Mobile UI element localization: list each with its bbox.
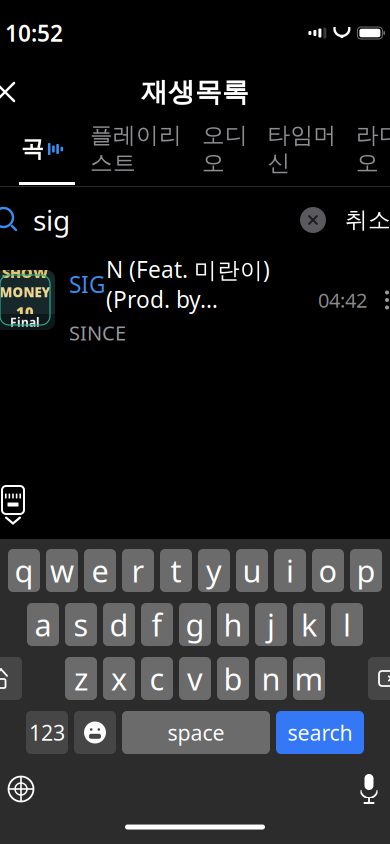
button[interactable]: g — [179, 603, 211, 646]
staticText: c — [149, 658, 164, 699]
button[interactable]: 취소 — [335, 198, 390, 242]
button[interactable]: 곡 — [3, 124, 81, 174]
button[interactable]: r — [122, 549, 154, 592]
button[interactable]: f — [141, 603, 173, 646]
button[interactable]: Dictation — [341, 765, 390, 813]
staticText: SIG — [69, 269, 106, 299]
staticText: w — [50, 550, 74, 591]
staticText: t — [170, 550, 181, 591]
button[interactable]: n — [255, 657, 287, 700]
button[interactable]: Delete — [368, 657, 390, 700]
button[interactable]: i — [274, 549, 306, 592]
button[interactable]: Hide keyboard — [0, 477, 41, 535]
button[interactable]: Emoji — [74, 711, 116, 754]
button[interactable]: c — [141, 657, 173, 700]
staticText: 타임머신 — [267, 121, 336, 177]
button[interactable]: b — [217, 657, 249, 700]
staticText: 라디오 — [356, 121, 390, 177]
staticText: g — [185, 604, 204, 645]
button[interactable]: More options — [367, 274, 390, 326]
button[interactable]: v — [179, 657, 211, 700]
staticText: 플레이리스트 — [90, 121, 182, 177]
button[interactable]: Close — [0, 70, 27, 114]
button[interactable]: SHOW — [0, 253, 390, 347]
button[interactable]: z — [65, 657, 97, 700]
button[interactable]: 타임머신 — [259, 124, 345, 174]
staticText: 04:42 — [318, 287, 367, 313]
staticText: s — [73, 604, 88, 645]
staticText: f — [151, 604, 162, 645]
staticText: 곡 — [21, 135, 44, 163]
button[interactable]: 123 — [26, 711, 68, 754]
staticText: h — [223, 604, 242, 645]
staticText: 123 — [29, 718, 65, 747]
staticText: z — [74, 658, 88, 699]
staticText: sig — [33, 201, 70, 239]
button[interactable]: d — [103, 603, 135, 646]
staticText: 10 — [16, 302, 34, 321]
button[interactable]: a — [27, 603, 59, 646]
staticText: x — [111, 658, 127, 699]
staticText: N (Feat. 미란이) (Prod. by… — [106, 254, 270, 314]
button[interactable]: k — [293, 603, 325, 646]
button[interactable]: 라디오 — [345, 124, 390, 174]
button[interactable]: l — [331, 603, 363, 646]
staticText: q — [14, 550, 33, 591]
button[interactable]: h — [217, 603, 249, 646]
button[interactable]: space — [122, 711, 270, 754]
button[interactable]: u — [236, 549, 268, 592]
staticText: SHOW — [2, 263, 48, 282]
staticText: SINCE — [69, 319, 126, 346]
button[interactable]: m — [293, 657, 325, 700]
staticText: d — [109, 604, 128, 645]
staticText: space — [167, 718, 224, 747]
button[interactable]: p — [350, 549, 382, 592]
button[interactable]: s — [65, 603, 97, 646]
staticText: MONEY — [0, 283, 50, 301]
staticText: n — [261, 658, 280, 699]
staticText: v — [187, 658, 203, 699]
staticText: Final — [10, 314, 40, 330]
button[interactable]: y — [198, 549, 230, 592]
staticText: 오디오 — [202, 121, 248, 177]
staticText: j — [267, 604, 275, 645]
staticText: search — [287, 718, 352, 747]
button[interactable]: x — [103, 657, 135, 700]
staticText: r — [131, 550, 144, 591]
staticText: b — [223, 658, 242, 699]
staticText: m — [294, 658, 323, 699]
button[interactable]: Clear text — [291, 198, 335, 242]
staticText: l — [343, 604, 351, 645]
staticText: 취소 — [345, 206, 390, 234]
button[interactable]: w — [46, 549, 78, 592]
staticText: a — [34, 604, 51, 645]
staticText: 재생목록 — [141, 76, 249, 108]
button[interactable]: e — [84, 549, 116, 592]
button[interactable]: t — [160, 549, 192, 592]
button[interactable]: o — [312, 549, 344, 592]
button[interactable]: j — [255, 603, 287, 646]
button[interactable]: 오디오 — [191, 124, 259, 174]
staticText: u — [242, 550, 261, 591]
button[interactable]: search — [276, 711, 364, 754]
staticText: p — [356, 550, 375, 591]
button[interactable]: 플레이리스트 — [81, 124, 191, 174]
staticText: i — [286, 550, 294, 591]
staticText: o — [318, 550, 337, 591]
staticText: 10:52 — [5, 18, 63, 48]
staticText: k — [301, 604, 317, 645]
button[interactable]: Change keyboard language — [0, 765, 49, 813]
button[interactable]: q — [8, 549, 40, 592]
button[interactable]: Shift — [0, 657, 22, 700]
staticText: e — [91, 550, 108, 591]
staticText: y — [206, 550, 222, 591]
